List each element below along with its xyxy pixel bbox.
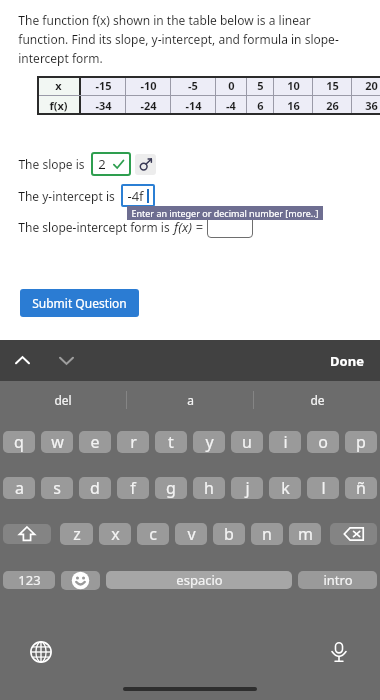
staticText: 10 bbox=[287, 78, 300, 93]
staticText: x bbox=[111, 523, 120, 545]
button[interactable]: y bbox=[193, 431, 225, 453]
button[interactable]: l bbox=[307, 477, 339, 499]
button[interactable]: b bbox=[213, 523, 245, 545]
button[interactable]: espacio bbox=[106, 571, 292, 589]
button[interactable]: s bbox=[41, 477, 73, 499]
staticText: de bbox=[310, 392, 325, 408]
staticText: s bbox=[53, 477, 61, 499]
staticText: ñ bbox=[356, 477, 366, 499]
staticText: r bbox=[130, 431, 137, 453]
staticText: z bbox=[73, 523, 81, 545]
staticText: 6 bbox=[257, 98, 264, 113]
button[interactable]: 123 bbox=[3, 571, 55, 589]
button[interactable]: o bbox=[307, 431, 339, 453]
staticText: i bbox=[283, 431, 288, 453]
staticText: w bbox=[51, 431, 64, 453]
button[interactable]: v bbox=[175, 523, 207, 545]
staticText: espacio bbox=[176, 571, 223, 589]
button[interactable]: u bbox=[231, 431, 263, 453]
staticText: -5 bbox=[188, 78, 198, 93]
button[interactable]: j bbox=[231, 477, 263, 499]
button[interactable]: w bbox=[41, 431, 73, 453]
button[interactable]: Previous field bbox=[0, 340, 44, 381]
button[interactable]: i bbox=[269, 431, 301, 453]
button[interactable]: c bbox=[137, 523, 169, 545]
button[interactable]: a bbox=[127, 381, 253, 419]
staticText: 15 bbox=[326, 78, 339, 93]
staticText: e bbox=[90, 431, 100, 453]
staticText: g bbox=[166, 477, 176, 499]
staticText: -4f bbox=[127, 187, 144, 205]
button[interactable]: Next field bbox=[44, 340, 88, 381]
staticText: del bbox=[54, 392, 72, 408]
staticText: -4 bbox=[226, 98, 236, 113]
staticText: -10 bbox=[140, 78, 157, 93]
staticText: u bbox=[242, 431, 252, 453]
staticText: o bbox=[318, 431, 328, 453]
staticText: -34 bbox=[95, 98, 112, 113]
button[interactable]: Backspace bbox=[330, 523, 377, 545]
staticText: -15 bbox=[95, 78, 112, 93]
staticText: l bbox=[321, 477, 326, 499]
staticText: p bbox=[356, 431, 366, 453]
staticText: 36 bbox=[365, 98, 378, 113]
button[interactable]: p bbox=[345, 431, 377, 453]
button[interactable]: -4f bbox=[121, 184, 155, 207]
button[interactable]: 2 bbox=[91, 152, 131, 176]
staticText: f bbox=[130, 477, 136, 499]
staticText: j bbox=[245, 477, 250, 499]
button[interactable]: g bbox=[155, 477, 187, 499]
button[interactable]: m bbox=[289, 523, 321, 545]
button[interactable]: Emoji bbox=[61, 571, 100, 590]
staticText: -24 bbox=[140, 98, 157, 113]
button[interactable]: t bbox=[155, 431, 187, 453]
staticText: h bbox=[204, 477, 214, 499]
button[interactable]: e bbox=[79, 431, 111, 453]
button[interactable]: a bbox=[3, 477, 35, 499]
staticText: 20 bbox=[365, 78, 378, 93]
staticText: f(x) = bbox=[174, 218, 203, 236]
button[interactable]: n bbox=[251, 523, 283, 545]
button[interactable]: de bbox=[254, 381, 380, 419]
staticText: t bbox=[168, 431, 174, 453]
button[interactable]: Submit Question bbox=[20, 289, 139, 317]
button[interactable]: h bbox=[193, 477, 225, 499]
button[interactable]: Voice input bbox=[322, 635, 356, 669]
staticText: The slope-intercept form is bbox=[18, 219, 170, 235]
staticText: a bbox=[187, 392, 194, 408]
staticText: 2 bbox=[98, 155, 106, 173]
button[interactable]: Change language bbox=[24, 635, 58, 669]
button[interactable]: k bbox=[269, 477, 301, 499]
staticText: The slope is bbox=[18, 156, 85, 172]
staticText: Submit Question bbox=[32, 295, 127, 311]
staticText: d bbox=[90, 477, 100, 499]
staticText: 0 bbox=[228, 78, 235, 93]
button[interactable]: ñ bbox=[345, 477, 377, 499]
button[interactable]: z bbox=[60, 523, 93, 545]
staticText: The y-intercept is bbox=[18, 188, 115, 204]
staticText: 5 bbox=[257, 78, 264, 93]
button[interactable] bbox=[207, 216, 253, 238]
button[interactable]: Shift bbox=[3, 524, 51, 544]
staticText: 123 bbox=[18, 571, 41, 589]
staticText: x bbox=[55, 78, 62, 93]
staticText: b bbox=[224, 523, 234, 545]
staticText: m bbox=[298, 523, 313, 545]
button[interactable]: intro bbox=[298, 571, 377, 589]
button[interactable]: Done bbox=[314, 344, 380, 378]
staticText: -14 bbox=[185, 98, 202, 113]
button[interactable]: d bbox=[79, 477, 111, 499]
staticText: y bbox=[205, 431, 214, 453]
staticText: k bbox=[281, 477, 290, 499]
button[interactable]: f bbox=[117, 477, 149, 499]
button[interactable]: Preview answer bbox=[135, 154, 156, 175]
staticText: f(x) bbox=[49, 98, 68, 113]
staticText: Done bbox=[330, 352, 364, 370]
button[interactable]: r bbox=[117, 431, 149, 453]
button[interactable]: x bbox=[99, 523, 131, 545]
button[interactable]: del bbox=[0, 381, 126, 419]
staticText: intro bbox=[323, 571, 353, 589]
staticText: n bbox=[262, 523, 272, 545]
button[interactable]: q bbox=[3, 431, 35, 453]
staticText: Enter an integer or decimal number [more… bbox=[131, 207, 319, 219]
